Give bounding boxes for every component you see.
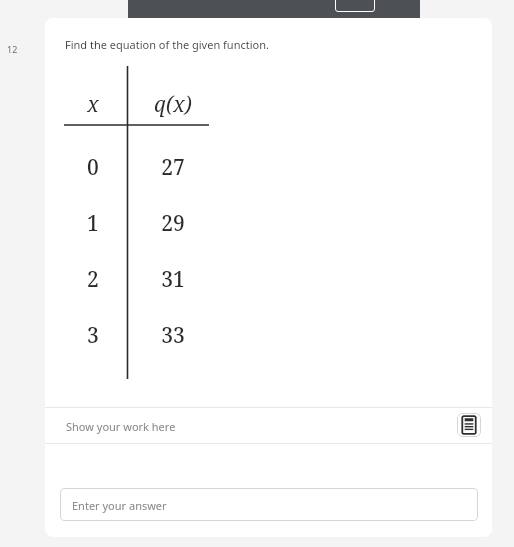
button[interactable]: Enter your answer <box>60 488 478 521</box>
staticText: 31 <box>137 265 209 307</box>
staticText: q(x) <box>137 90 209 132</box>
staticText: 1 <box>64 209 122 251</box>
staticText: Find the equation of the given function. <box>65 37 269 52</box>
staticText: 29 <box>137 209 209 251</box>
staticText: Show your work here <box>66 419 176 434</box>
button[interactable] <box>128 0 420 18</box>
staticText: 27 <box>137 153 209 195</box>
button[interactable]: Toolbar action <box>335 0 375 12</box>
staticText: 12 <box>7 43 18 55</box>
button[interactable]: Show your work here <box>45 407 492 444</box>
staticText: Enter your answer <box>72 498 167 513</box>
button[interactable]: Open calculator <box>457 413 481 437</box>
staticText: 0 <box>64 153 122 195</box>
staticText: 3 <box>64 321 122 363</box>
staticText: 33 <box>137 321 209 363</box>
staticText: x <box>64 90 122 132</box>
staticText: 2 <box>64 265 122 307</box>
